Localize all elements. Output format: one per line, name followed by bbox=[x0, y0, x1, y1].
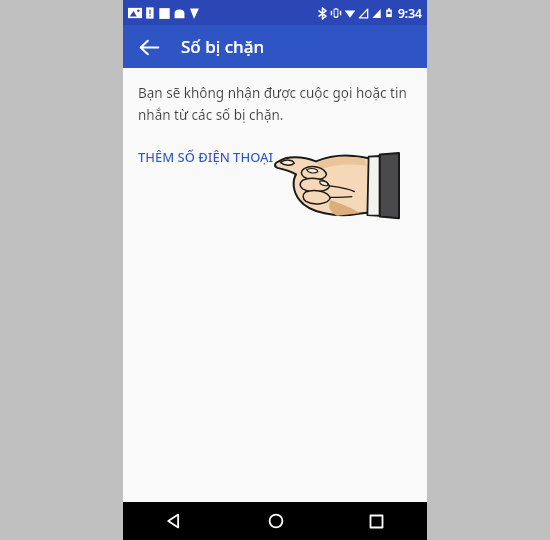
staticText: THÊM SỐ ĐIỆN THOẠI bbox=[138, 148, 274, 166]
button[interactable]: Recent apps bbox=[326, 502, 427, 540]
staticText: Số bị chặn bbox=[181, 35, 265, 58]
staticText: Bạn sẽ không nhận được cuộc gọi hoặc tin… bbox=[138, 84, 413, 124]
button[interactable]: Back bbox=[123, 502, 225, 540]
button[interactable]: THÊM SỐ ĐIỆN THOẠI bbox=[138, 148, 274, 166]
staticText: 9:34 bbox=[398, 5, 422, 21]
button[interactable]: Home bbox=[225, 502, 326, 540]
button[interactable]: Back bbox=[131, 29, 167, 65]
